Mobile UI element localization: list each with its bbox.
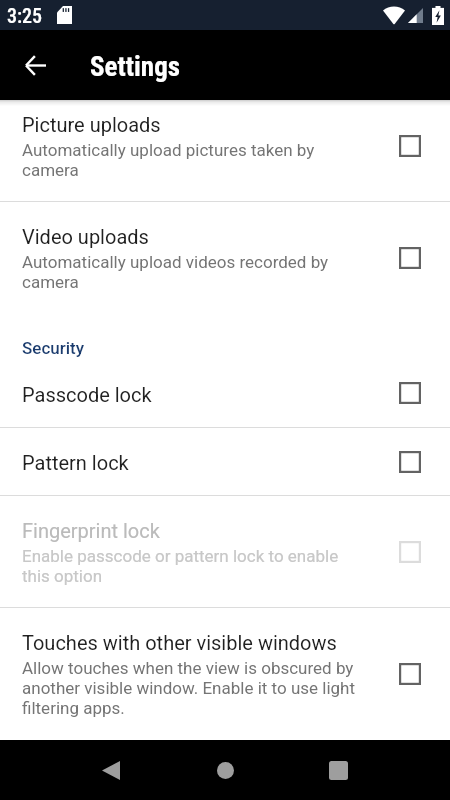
staticText: Automatically upload pictures taken by c… <box>22 140 355 180</box>
other: Battery charging <box>432 6 444 25</box>
button[interactable]: Recent apps <box>314 746 362 794</box>
staticText: Enable passcode or pattern lock to enabl… <box>22 546 355 586</box>
button[interactable]: Home <box>201 746 249 794</box>
button[interactable]: Picture uploads <box>0 100 450 202</box>
staticText: Passcode lock <box>22 383 152 406</box>
button[interactable]: Pattern lock <box>0 428 450 495</box>
staticText: Pattern lock <box>22 451 129 474</box>
button[interactable]: Fingerprint lock <box>399 541 421 563</box>
button[interactable]: Passcode lock <box>0 359 450 427</box>
button[interactable]: Pattern lock <box>399 451 421 473</box>
staticText: Video uploads <box>22 225 149 248</box>
staticText: Automatically upload videos recorded by … <box>22 252 355 292</box>
staticText: Picture uploads <box>22 113 161 136</box>
other: SD card <box>57 6 72 24</box>
button[interactable]: Picture uploads <box>399 135 421 157</box>
button[interactable]: Video uploads <box>399 247 421 269</box>
staticText: Security <box>22 338 85 358</box>
button[interactable]: Passcode lock <box>399 382 421 404</box>
staticText: Touches with other visible windows <box>22 631 337 654</box>
staticText: Allow touches when the view is obscured … <box>22 658 355 718</box>
button[interactable]: Video uploads <box>0 202 450 313</box>
button[interactable]: Touches with other visible windows <box>0 608 450 740</box>
button[interactable]: Back <box>87 746 135 794</box>
other: Wi-Fi <box>383 7 405 24</box>
staticText: Fingerprint lock <box>22 519 160 542</box>
button[interactable]: Fingerprint lock <box>0 496 450 607</box>
button[interactable]: Touches with other visible windows <box>399 663 421 685</box>
staticText: Settings <box>90 51 180 83</box>
staticText: 3:25 <box>7 4 43 27</box>
other: Signal <box>408 8 423 23</box>
button[interactable]: Back <box>13 43 57 87</box>
